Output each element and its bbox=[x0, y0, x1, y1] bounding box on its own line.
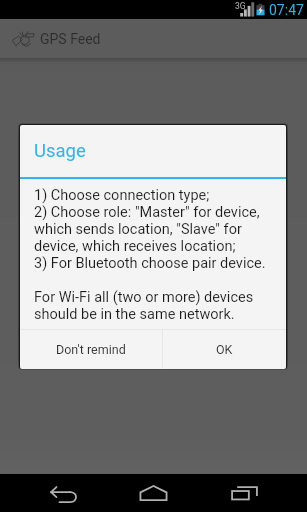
staticText: Usage bbox=[34, 140, 86, 162]
staticText: Don't remind bbox=[56, 342, 126, 357]
staticText: 07:47 bbox=[269, 2, 304, 18]
staticText: 3G bbox=[235, 1, 246, 11]
staticText: GPS Feed bbox=[40, 31, 101, 47]
button[interactable]: Home bbox=[113, 474, 194, 512]
staticText: 1) Choose connection type; 2) Choose rol… bbox=[34, 187, 272, 323]
button[interactable]: Back bbox=[24, 474, 104, 512]
button[interactable]: Recent apps bbox=[204, 474, 285, 512]
button[interactable]: Don't remind bbox=[20, 330, 162, 369]
button[interactable]: OK bbox=[163, 330, 286, 369]
staticText: OK bbox=[216, 342, 233, 357]
